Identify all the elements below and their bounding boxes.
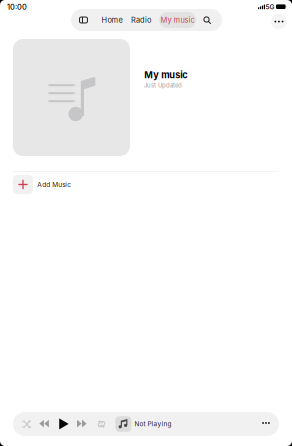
button[interactable]: Search: [203, 16, 211, 24]
button[interactable]: My music: [159, 12, 196, 28]
staticText: Not Playing: [134, 420, 171, 428]
staticText: Home: [101, 15, 122, 24]
button[interactable]: Radio: [128, 13, 154, 27]
button[interactable]: Not Playing: [113, 413, 253, 435]
staticText: 5G: [266, 3, 275, 11]
button[interactable]: Add Music: [13, 174, 279, 195]
button[interactable]: Shuffle: [22, 420, 32, 429]
button[interactable]: Play: [59, 418, 69, 429]
button[interactable]: Repeat: [97, 419, 106, 428]
button[interactable]: Show Sidebar: [79, 16, 88, 23]
staticText: Radio: [131, 15, 151, 24]
button[interactable]: More options: [258, 417, 274, 429]
staticText: Just Updated: [144, 82, 182, 89]
button[interactable]: Next: [77, 420, 87, 427]
staticText: Add Music: [37, 180, 71, 188]
button[interactable]: Home: [98, 13, 126, 27]
button[interactable]: Previous: [39, 420, 49, 427]
staticText: My music: [144, 69, 187, 80]
button[interactable]: More: [271, 14, 287, 29]
staticText: My music: [160, 15, 194, 24]
staticText: 10:00: [7, 2, 27, 11]
